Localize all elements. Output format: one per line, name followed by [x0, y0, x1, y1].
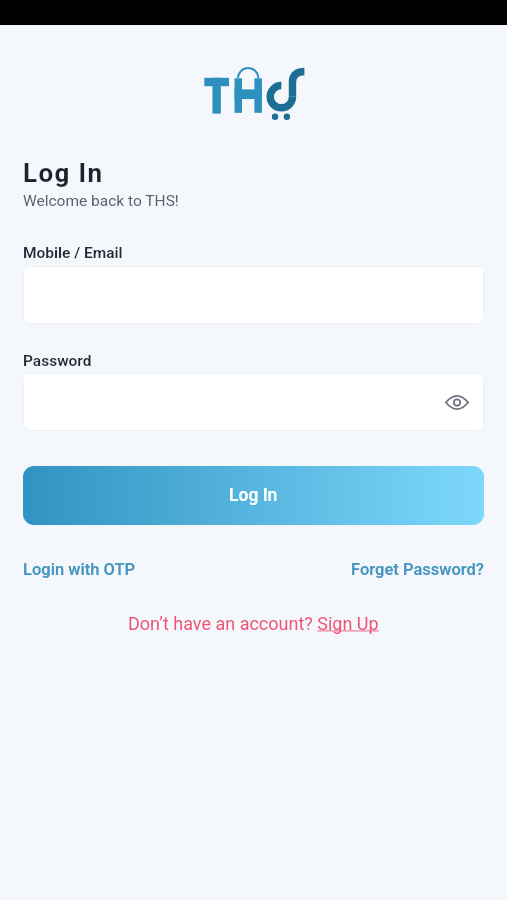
button[interactable]: Don’t have an account? Sign Up — [128, 613, 379, 634]
staticText: Mobile / Email — [23, 244, 123, 262]
button[interactable] — [23, 266, 484, 324]
button[interactable]: Show password — [442, 387, 472, 417]
button[interactable]: Login with OTP — [23, 560, 136, 579]
button[interactable]: Log In — [23, 466, 484, 525]
staticText: Login with OTP — [23, 560, 136, 579]
button[interactable]: Show password — [23, 373, 484, 431]
staticText: Log In — [229, 485, 278, 506]
staticText: Forget Password? — [351, 560, 484, 579]
staticText: Log In — [23, 158, 104, 188]
staticText: Welcome back to THS! — [23, 192, 179, 210]
staticText: Don’t have an account? Sign Up — [128, 613, 379, 634]
staticText: Password — [23, 352, 92, 370]
button[interactable]: Forget Password? — [351, 560, 484, 579]
